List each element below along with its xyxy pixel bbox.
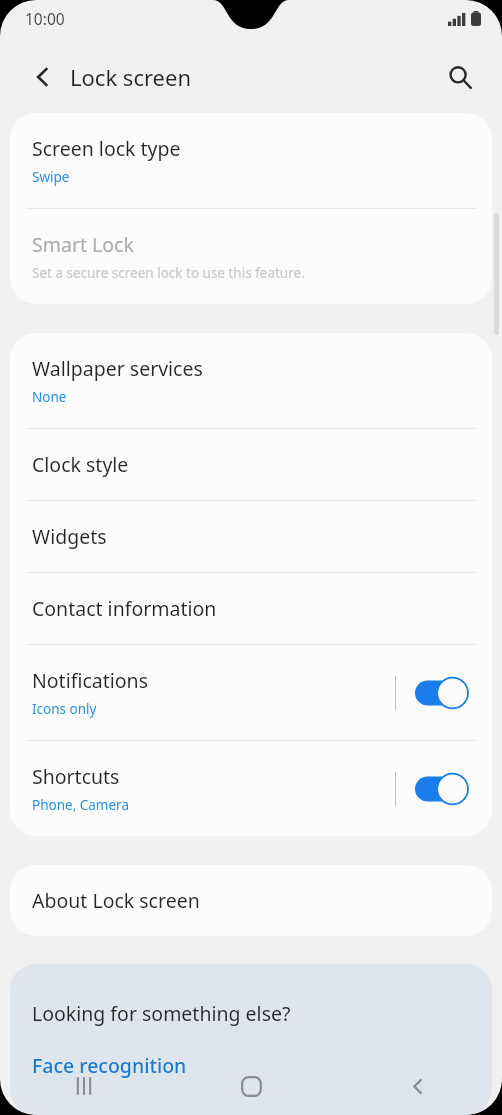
staticText: Screen lock type (32, 135, 181, 162)
staticText: About Lock screen (32, 887, 200, 914)
staticText: Widgets (32, 523, 107, 550)
staticText: 10:00 (25, 8, 65, 29)
staticText: Icons only (32, 700, 97, 718)
button[interactable]: Search (437, 54, 483, 100)
button[interactable]: Screen lock type (10, 113, 492, 208)
button[interactable]: Home (168, 1057, 335, 1115)
staticText: Set a secure screen lock to use this fea… (32, 264, 305, 282)
button[interactable]: Notifications toggle (415, 673, 469, 713)
staticText: Smart Lock (32, 231, 134, 258)
button[interactable]: Back (335, 1057, 502, 1115)
staticText: None (32, 388, 67, 406)
staticText: Shortcuts (32, 763, 120, 790)
button[interactable]: Clock style (10, 429, 492, 500)
staticText: Contact information (32, 595, 217, 622)
staticText: Phone, Camera (32, 796, 129, 814)
staticText: Swipe (32, 168, 70, 186)
button[interactable]: Face recognition (32, 1052, 187, 1079)
button[interactable]: Back (21, 55, 65, 99)
staticText: Lock screen (70, 62, 192, 92)
button[interactable]: Widgets (10, 501, 492, 572)
staticText: Clock style (32, 451, 129, 478)
button[interactable]: Contact information (10, 573, 492, 644)
staticText: Looking for something else? (32, 1000, 291, 1027)
button[interactable]: Shortcuts toggle (415, 769, 469, 809)
button[interactable]: Shortcuts (10, 741, 492, 836)
button[interactable]: Notifications (10, 645, 492, 740)
button[interactable]: Recents (0, 1057, 168, 1115)
staticText: Wallpaper services (32, 355, 203, 382)
staticText: Notifications (32, 667, 148, 694)
button[interactable]: Smart Lock (10, 209, 492, 304)
button[interactable]: About Lock screen (10, 865, 492, 936)
button[interactable]: Wallpaper services (10, 333, 492, 428)
